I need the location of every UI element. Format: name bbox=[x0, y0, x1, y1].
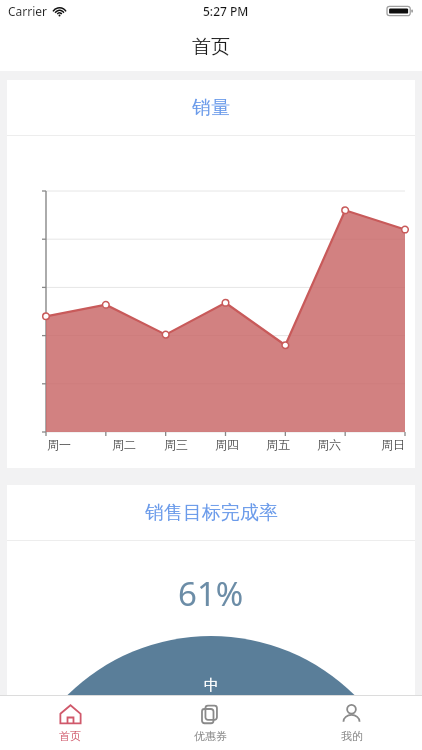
staticText: 周日 bbox=[381, 437, 405, 452]
button[interactable]: 优惠券 bbox=[140, 696, 281, 750]
staticText: 5:27 PM bbox=[203, 3, 249, 19]
staticText: 首页 bbox=[59, 729, 81, 743]
staticText: 周三 bbox=[164, 437, 188, 452]
staticText: 我的 bbox=[341, 729, 363, 743]
staticText: Carrier bbox=[8, 3, 48, 19]
button[interactable]: 我的 bbox=[281, 696, 422, 750]
staticText: 周一 bbox=[47, 437, 71, 452]
staticText: 中 bbox=[204, 676, 219, 695]
staticText: 优惠券 bbox=[194, 729, 227, 743]
staticText: 周六 bbox=[317, 437, 341, 452]
staticText: 周五 bbox=[266, 437, 290, 452]
staticText: 销售目标完成率 bbox=[145, 501, 278, 525]
staticText: 61% bbox=[178, 571, 244, 616]
staticText: 周二 bbox=[112, 437, 136, 452]
staticText: 首页 bbox=[192, 35, 230, 59]
staticText: 销量 bbox=[192, 96, 230, 120]
staticText: 周四 bbox=[215, 437, 239, 452]
button[interactable]: 首页 bbox=[0, 696, 140, 750]
